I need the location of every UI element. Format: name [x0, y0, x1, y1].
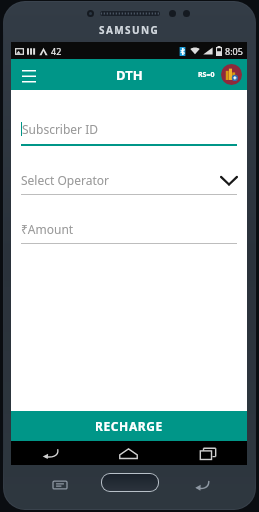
button[interactable]: Home	[102, 474, 158, 491]
button[interactable]: Profile	[221, 64, 242, 85]
button[interactable]: Back	[195, 477, 210, 492]
staticText: 8:05	[225, 45, 243, 57]
staticText: SAMSUNG	[99, 23, 160, 37]
staticText: RS=0	[198, 70, 215, 80]
button[interactable]: ₹Amount	[21, 215, 237, 243]
staticText: Subscriber ID	[22, 121, 98, 137]
staticText: 42	[51, 45, 62, 57]
button[interactable]: Back	[11, 441, 89, 465]
button[interactable]: Subscriber ID	[21, 114, 237, 144]
button[interactable]: Home	[89, 441, 168, 465]
staticText: Select Operator	[21, 172, 109, 188]
staticText: DTH	[116, 66, 143, 84]
button[interactable]: Open navigation drawer	[17, 63, 41, 87]
button[interactable]: Select Operator	[21, 166, 237, 194]
staticText: ₹Amount	[21, 221, 74, 237]
button[interactable]: Menu	[53, 478, 67, 492]
button[interactable]: RECHARGE	[11, 411, 247, 441]
button[interactable]: Recent apps	[168, 441, 247, 465]
staticText: RECHARGE	[95, 418, 163, 434]
button[interactable]: RS=0	[196, 67, 217, 83]
